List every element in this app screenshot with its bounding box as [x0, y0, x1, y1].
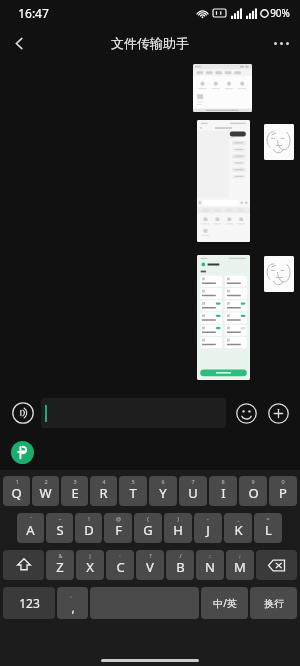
- staticText: 3: [73, 478, 77, 485]
- button[interactable]: 5: [119, 476, 147, 506]
- staticText: ,: [71, 599, 75, 615]
- staticText: M: [234, 558, 246, 576]
- staticText: -: [207, 515, 209, 522]
- button[interactable]: -: [194, 513, 222, 543]
- staticText: 7: [191, 478, 195, 485]
- staticText: P: [279, 484, 287, 502]
- button[interactable]: [264, 256, 294, 292]
- staticText: Y: [159, 484, 167, 502]
- button[interactable]: Voice message: [8, 398, 38, 428]
- button[interactable]: Shift: [3, 550, 44, 580]
- staticText: `: [30, 515, 32, 522]
- button[interactable]: 0: [269, 476, 297, 506]
- staticText: V: [146, 558, 154, 576]
- button[interactable]: &: [46, 550, 74, 580]
- button[interactable]: 换行: [250, 587, 297, 619]
- button[interactable]: :: [196, 550, 224, 580]
- staticText: 6: [161, 478, 165, 485]
- staticText: _: [237, 515, 240, 522]
- staticText: ~: [58, 515, 62, 522]
- staticText: 0: [281, 478, 285, 485]
- staticText: O: [248, 484, 259, 502]
- button[interactable]: @: [104, 513, 132, 543]
- button[interactable]: 8: [209, 476, 237, 506]
- staticText: 2: [44, 478, 48, 485]
- button[interactable]: 4: [90, 476, 117, 506]
- staticText: =: [266, 515, 270, 522]
- staticText: ): [177, 515, 179, 522]
- staticText: 换行: [264, 597, 284, 610]
- button[interactable]: =: [254, 513, 282, 543]
- button[interactable]: ·: [106, 550, 134, 580]
- button[interactable]: 123: [3, 587, 55, 619]
- button[interactable]: (: [134, 513, 162, 543]
- staticText: X: [86, 558, 94, 576]
- button[interactable]: /: [166, 550, 194, 580]
- button[interactable]: 2: [32, 476, 59, 506]
- button[interactable]: More functions: [264, 399, 292, 427]
- staticText: &: [58, 552, 63, 559]
- staticText: 16:47: [18, 5, 49, 21]
- button[interactable]: [193, 64, 252, 112]
- staticText: 1: [15, 478, 19, 485]
- staticText: B: [176, 558, 185, 576]
- staticText: H: [173, 521, 183, 539]
- staticText: 文件传输助手: [111, 35, 189, 51]
- staticText: N: [205, 558, 215, 576]
- button[interactable]: [41, 398, 226, 428]
- staticText: U: [188, 484, 198, 502]
- staticText: ;: [239, 552, 241, 559]
- staticText: :: [209, 552, 211, 559]
- button[interactable]: [264, 124, 294, 160]
- staticText: @: [116, 515, 121, 522]
- button[interactable]: 。: [57, 587, 88, 619]
- staticText: C: [116, 558, 125, 576]
- button[interactable]: Backspace: [256, 550, 297, 580]
- staticText: 9: [251, 478, 255, 485]
- staticText: G: [143, 521, 153, 539]
- button[interactable]: 7: [179, 476, 207, 506]
- button[interactable]: ?: [136, 550, 164, 580]
- staticText: Z: [56, 558, 64, 576]
- staticText: 。: [70, 591, 76, 599]
- staticText: 8: [221, 478, 225, 485]
- button[interactable]: 1: [3, 476, 30, 506]
- staticText: R: [99, 484, 108, 502]
- button[interactable]: !: [75, 513, 102, 543]
- staticText: E: [71, 484, 79, 502]
- staticText: ?: [149, 552, 152, 559]
- button[interactable]: 3: [61, 476, 88, 506]
- button[interactable]: `: [17, 513, 44, 543]
- staticText: /: [179, 552, 182, 559]
- staticText: F: [115, 521, 122, 539]
- button[interactable]: ;: [226, 550, 254, 580]
- button[interactable]: Emoji: [232, 399, 260, 427]
- button[interactable]: |: [76, 550, 104, 580]
- staticText: 90%: [270, 6, 290, 20]
- staticText: J: [206, 521, 210, 539]
- button[interactable]: _: [224, 513, 252, 543]
- button[interactable]: [197, 255, 250, 380]
- button[interactable]: More options: [262, 26, 300, 60]
- staticText: L: [265, 521, 272, 539]
- staticText: S: [56, 521, 64, 539]
- button[interactable]: [197, 120, 250, 242]
- button[interactable]: ~: [46, 513, 73, 543]
- button[interactable]: 6: [149, 476, 177, 506]
- staticText: 中/英: [213, 596, 237, 610]
- staticText: (: [147, 515, 149, 522]
- staticText: W: [39, 484, 52, 502]
- button[interactable]: 中/英: [201, 587, 248, 619]
- button[interactable]: Contact avatar: [11, 441, 34, 464]
- button[interactable]: ): [164, 513, 192, 543]
- staticText: ·: [119, 552, 121, 559]
- staticText: !: [88, 515, 90, 522]
- staticText: |: [88, 552, 92, 559]
- staticText: T: [129, 484, 137, 502]
- button[interactable]: Back: [0, 26, 38, 60]
- staticText: D: [84, 521, 94, 539]
- staticText: 123: [19, 595, 40, 611]
- button[interactable]: 9: [239, 476, 267, 506]
- staticText: A: [26, 521, 35, 539]
